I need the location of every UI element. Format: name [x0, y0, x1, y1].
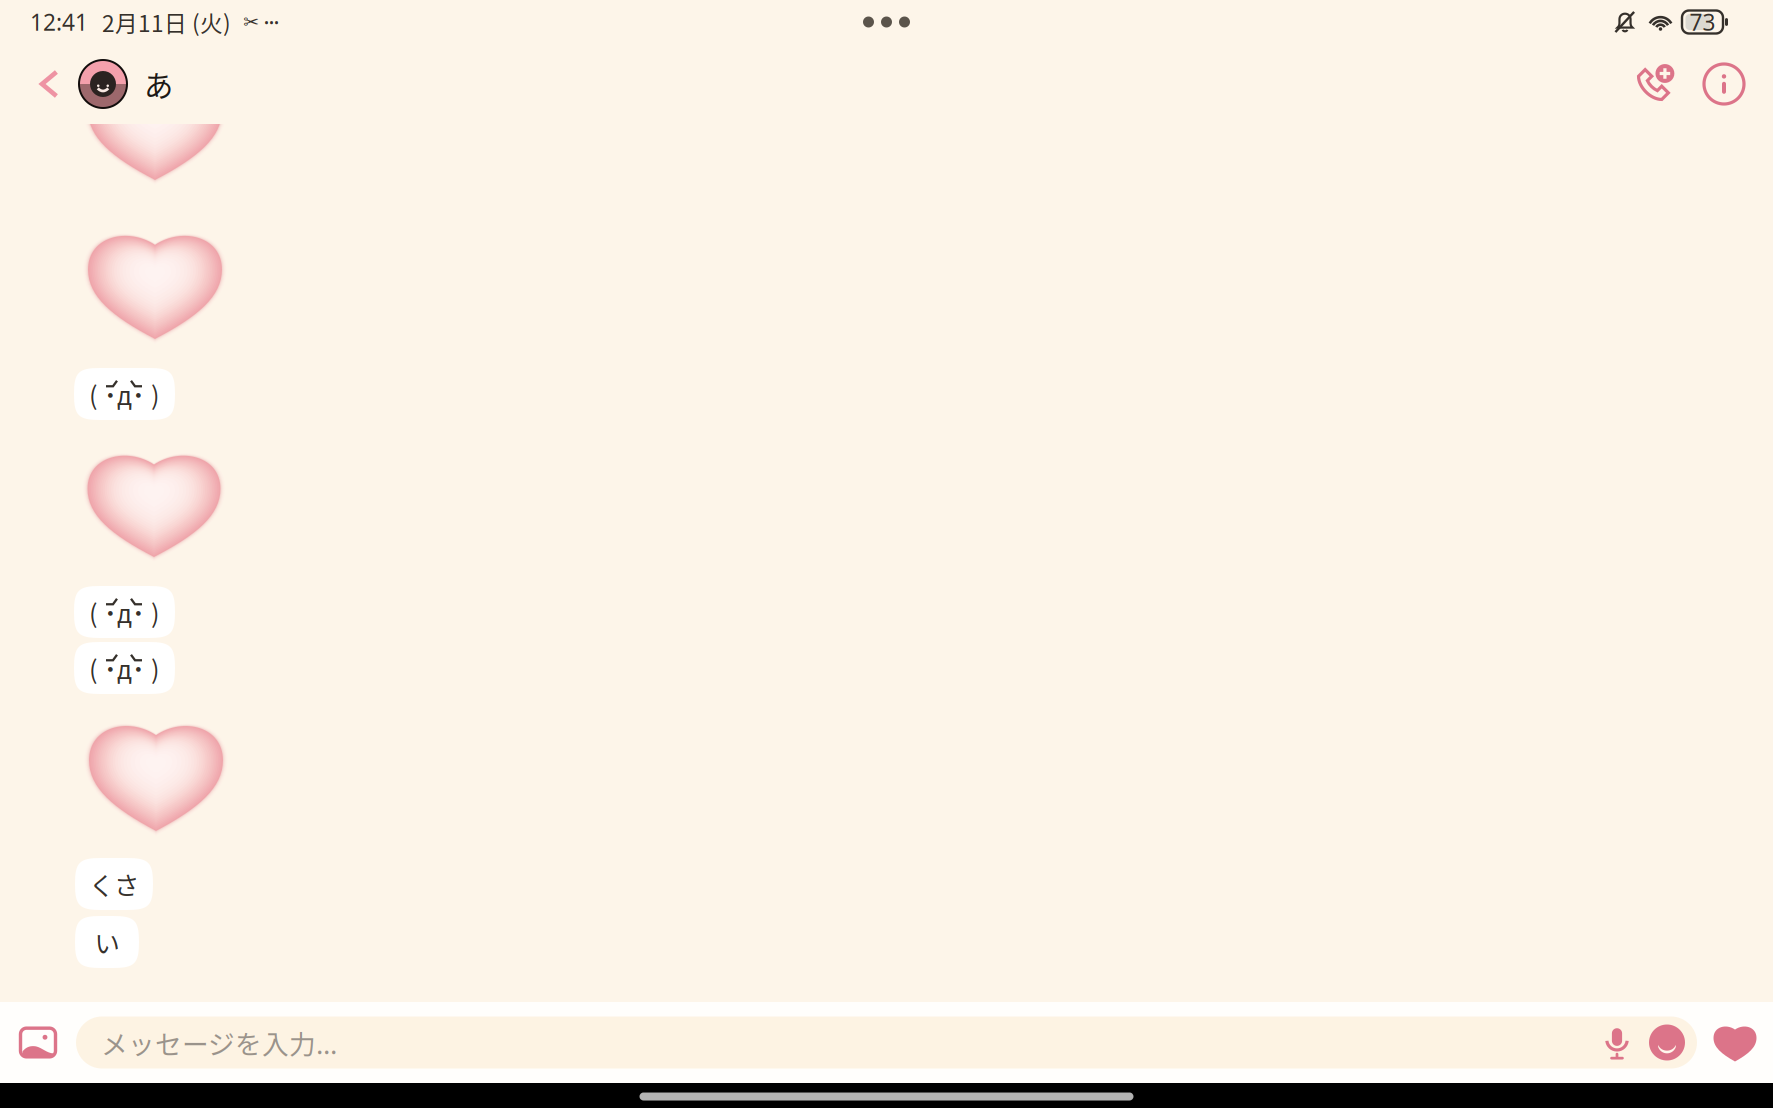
staticText: ( ˙д˙ ): [89, 650, 160, 686]
button[interactable]: Voice message: [1593, 1016, 1641, 1068]
staticText: 2月11日 (火): [102, 6, 231, 38]
staticText: あ: [144, 63, 173, 105]
staticText: メッセージを入力...: [101, 1023, 337, 1062]
button[interactable]: Add call: [1619, 49, 1689, 119]
staticText: 73: [1689, 7, 1715, 37]
button[interactable]: Photos: [0, 1012, 76, 1072]
button[interactable]: Back: [18, 49, 78, 119]
staticText: い: [94, 924, 119, 960]
staticText: 12:41: [30, 7, 88, 37]
staticText: ( ˙д˙ ): [89, 594, 160, 630]
staticText: ✂: [243, 11, 259, 33]
staticText: ( ˙д˙ ): [89, 376, 160, 412]
button[interactable]: Info: [1689, 49, 1759, 119]
button[interactable]: Send heart: [1697, 1012, 1773, 1072]
staticText: •••: [264, 13, 279, 31]
button[interactable]: あ: [78, 50, 173, 118]
staticText: くさ: [89, 866, 139, 902]
button[interactable]: Stickers: [1641, 1016, 1693, 1068]
